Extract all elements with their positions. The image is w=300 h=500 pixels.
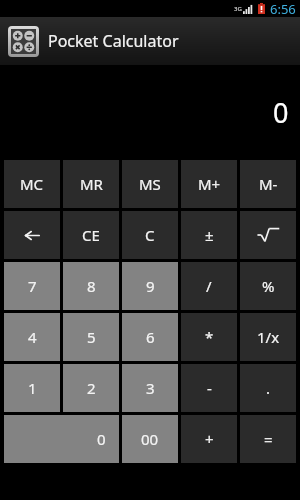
staticText: % bbox=[262, 276, 275, 296]
button[interactable]: C bbox=[122, 211, 178, 259]
button[interactable]: 0 bbox=[4, 415, 119, 463]
button[interactable]: MC bbox=[4, 160, 60, 208]
button[interactable]: 2 bbox=[63, 364, 119, 412]
button[interactable]: MS bbox=[122, 160, 178, 208]
staticText: / bbox=[206, 276, 212, 296]
staticText: C bbox=[145, 225, 155, 245]
button[interactable]: 9 bbox=[122, 262, 178, 310]
button[interactable]: 4 bbox=[4, 313, 60, 361]
staticText: 3G bbox=[234, 5, 242, 13]
staticText: 5 bbox=[87, 327, 96, 347]
staticText: Pocket Calculator bbox=[48, 30, 179, 52]
button[interactable]: CE bbox=[63, 211, 119, 259]
button[interactable]: 1/x bbox=[240, 313, 296, 361]
staticText: M+ bbox=[198, 174, 221, 194]
staticText: 6:56 bbox=[270, 0, 296, 17]
staticText: - bbox=[207, 378, 212, 398]
button[interactable]: ± bbox=[181, 211, 237, 259]
staticText: CE bbox=[82, 225, 100, 245]
staticText: * bbox=[205, 327, 214, 347]
staticText: 0 bbox=[97, 429, 106, 449]
button[interactable]: 7 bbox=[4, 262, 60, 310]
staticText: MC bbox=[20, 174, 44, 194]
staticText: 2 bbox=[87, 378, 96, 398]
button[interactable]: - bbox=[181, 364, 237, 412]
button[interactable]: 5 bbox=[63, 313, 119, 361]
staticText: M- bbox=[259, 174, 278, 194]
staticText: ± bbox=[205, 225, 214, 245]
button[interactable]: / bbox=[181, 262, 237, 310]
staticText: 7 bbox=[28, 276, 37, 296]
button[interactable]: Square root bbox=[240, 211, 296, 259]
button[interactable]: M- bbox=[240, 160, 296, 208]
button[interactable]: 00 bbox=[122, 415, 178, 463]
staticText: MR bbox=[80, 174, 103, 194]
staticText: 0 bbox=[273, 94, 289, 131]
staticText: 8 bbox=[87, 276, 96, 296]
staticText: MS bbox=[139, 174, 161, 194]
button[interactable]: 1 bbox=[4, 364, 60, 412]
button[interactable]: = bbox=[240, 415, 296, 463]
staticText: + bbox=[205, 429, 214, 449]
staticText: = bbox=[264, 429, 273, 449]
button[interactable]: 8 bbox=[63, 262, 119, 310]
staticText: 6 bbox=[146, 327, 155, 347]
staticText: 9 bbox=[146, 276, 155, 296]
button[interactable]: Backspace bbox=[4, 211, 60, 259]
button[interactable]: M+ bbox=[181, 160, 237, 208]
staticText: 1 bbox=[28, 378, 37, 398]
button[interactable]: + bbox=[181, 415, 237, 463]
button[interactable]: 3 bbox=[122, 364, 178, 412]
button[interactable]: Pocket Calculator bbox=[0, 17, 300, 65]
staticText: 00 bbox=[141, 429, 159, 449]
button[interactable]: 6 bbox=[122, 313, 178, 361]
button[interactable]: * bbox=[181, 313, 237, 361]
button[interactable]: % bbox=[240, 262, 296, 310]
staticText: 1/x bbox=[257, 327, 280, 347]
staticText: . bbox=[266, 378, 271, 398]
staticText: 4 bbox=[28, 327, 37, 347]
button[interactable]: MR bbox=[63, 160, 119, 208]
staticText: 3 bbox=[146, 378, 155, 398]
button[interactable]: . bbox=[240, 364, 296, 412]
